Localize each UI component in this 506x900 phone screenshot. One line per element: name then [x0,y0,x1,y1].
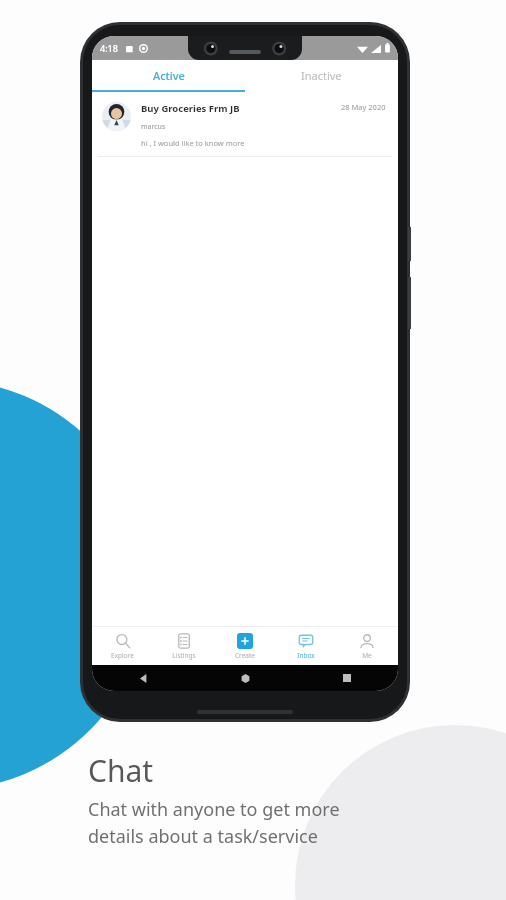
button[interactable]: Create [214,627,275,665]
staticText: hi , I would like to know more [141,138,245,148]
staticText: Buy Groceries Frm JB [141,102,341,115]
staticText: Explore [111,651,134,660]
button[interactable]: Active [92,60,245,90]
button[interactable]: Buy Groceries Frm JB [92,92,398,157]
staticText: Create [235,651,255,660]
button[interactable]: Home [194,665,296,691]
button[interactable]: Inbox [275,627,336,665]
button[interactable]: Back [92,665,194,691]
button[interactable]: Recent apps [296,665,398,691]
staticText: Active [153,68,185,83]
staticText: Chat with anyone to get more [88,797,340,822]
staticText: details about a task/service [88,824,318,849]
button[interactable]: Inactive [245,60,398,90]
staticText: marcus [141,122,166,132]
button[interactable]: Explore [92,627,153,665]
staticText: 28 May 2020 [341,102,386,112]
staticText: Me [362,651,372,660]
staticText: Chat [88,750,154,791]
staticText: Inbox [297,651,315,660]
button[interactable]: Me [336,627,397,665]
staticText: 4:18 [100,42,118,54]
button[interactable]: Listings [153,627,214,665]
staticText: Listings [172,651,196,660]
staticText: Inactive [301,68,342,83]
